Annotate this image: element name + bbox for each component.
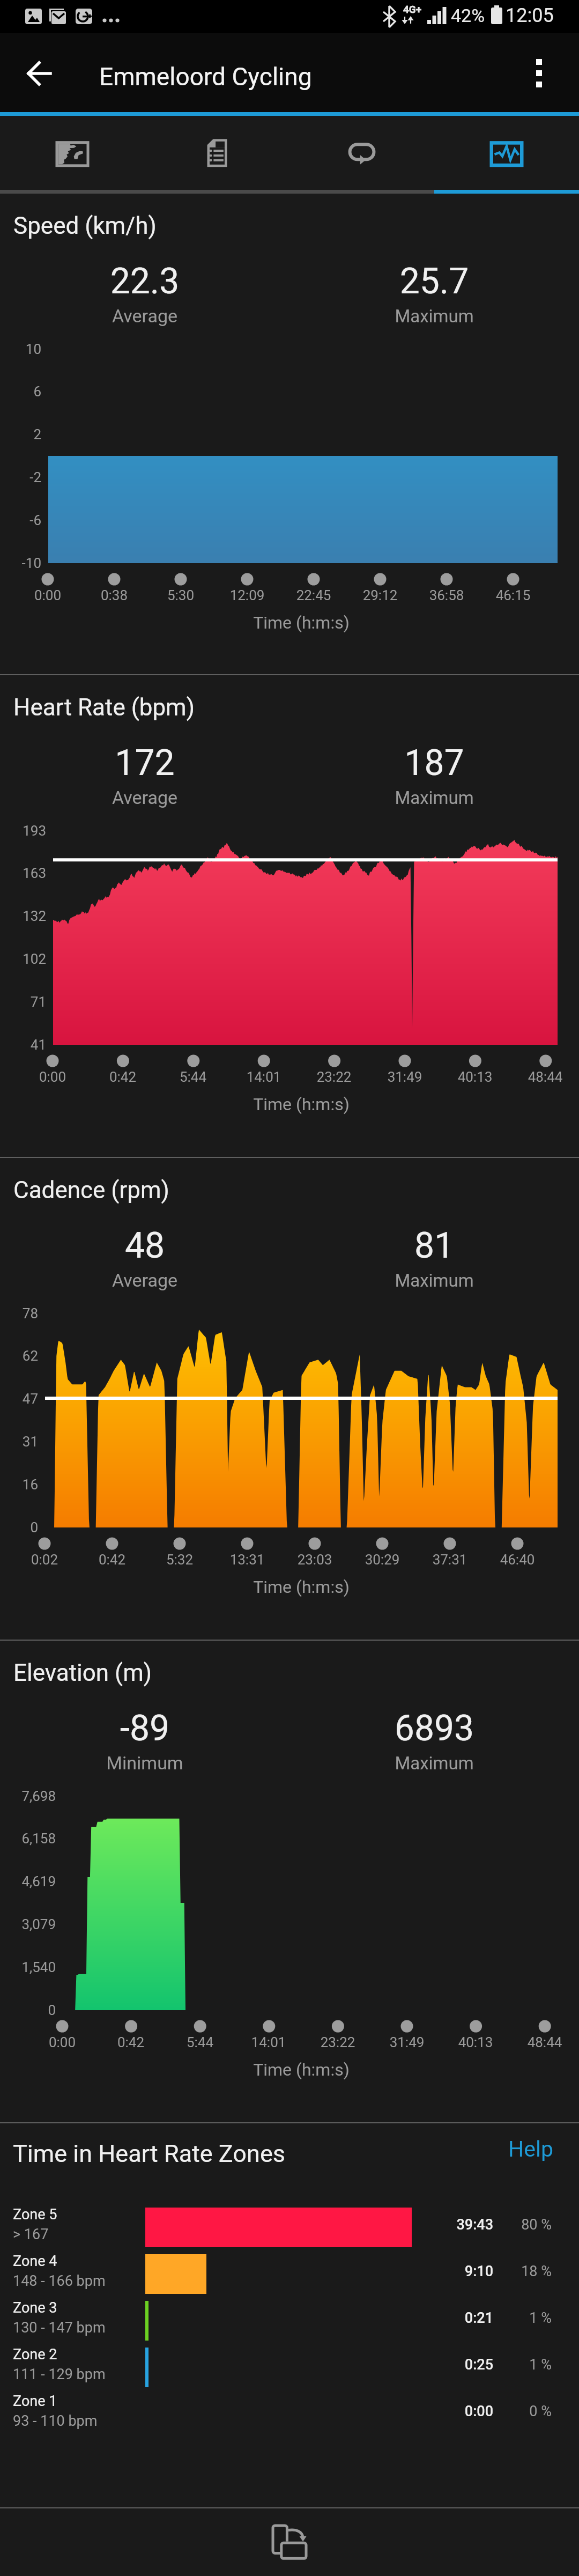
button[interactable]: Help — [499, 2130, 563, 2168]
staticText: 22:45 — [153, 587, 474, 603]
staticText: 71 — [0, 994, 46, 1010]
button[interactable]: Zone 2 — [0, 2348, 579, 2394]
staticText: 111 - 129 bpm — [13, 2366, 106, 2383]
staticText: 6893 — [273, 1708, 579, 1749]
staticText: Time in Heart Rate Zones — [13, 2139, 285, 2168]
staticText: 25.7 — [273, 261, 579, 302]
staticText: -2 — [0, 469, 41, 485]
staticText: 48 — [0, 1225, 306, 1266]
staticText: 0:21 — [407, 2309, 493, 2327]
button[interactable]: Map — [0, 116, 145, 190]
staticText: Time (h:m:s) — [140, 1577, 462, 1597]
staticText: 6,158 — [0, 1830, 56, 1847]
staticText: 187 — [273, 742, 579, 784]
button[interactable]: Zone 4 — [0, 2254, 579, 2301]
button[interactable]: Details — [145, 116, 289, 190]
staticText: 0 — [0, 2002, 56, 2018]
button[interactable]: Zone 5 — [0, 2208, 579, 2254]
staticText: 193 — [0, 823, 46, 839]
staticText: 0:38 — [0, 587, 275, 603]
staticText: Cadence (rpm) — [13, 1176, 169, 1204]
staticText: 0 % — [488, 2403, 552, 2420]
staticText: 0:00 — [0, 2034, 223, 2050]
staticText: 0:42 — [0, 2034, 292, 2050]
staticText: 0:00 — [407, 2403, 493, 2420]
button[interactable]: Rotate screen — [257, 2510, 322, 2574]
staticText: 14:01 — [103, 1069, 425, 1085]
staticText: 93 - 110 bpm — [13, 2412, 98, 2430]
staticText: 163 — [0, 865, 46, 881]
staticText: Zone 2 — [13, 2346, 57, 2363]
button[interactable]: More options — [518, 38, 561, 80]
staticText: 14:01 — [108, 2034, 429, 2050]
staticText: 40:13 — [315, 2034, 579, 2050]
staticText: 29:12 — [219, 587, 541, 603]
staticText: 12:05 — [506, 4, 554, 27]
staticText: 0:42 — [0, 1552, 273, 1568]
staticText: Average — [0, 1269, 306, 1291]
staticText: 30:29 — [221, 1552, 543, 1568]
staticText: Time (h:m:s) — [140, 1094, 462, 1114]
staticText: Heart Rate (bpm) — [13, 693, 195, 721]
staticText: 12:09 — [86, 587, 408, 603]
staticText: 4,619 — [0, 1873, 56, 1889]
staticText: 0:00 — [0, 1069, 213, 1085]
staticText: 7,698 — [0, 1788, 56, 1804]
staticText: 23:22 — [177, 2034, 499, 2050]
staticText: 31:49 — [244, 1069, 566, 1085]
staticText: 172 — [0, 742, 306, 784]
staticText: 0 — [0, 1519, 38, 1536]
staticText: 13:31 — [86, 1552, 408, 1568]
staticText: Help — [508, 2136, 553, 2162]
staticText: Zone 4 — [13, 2253, 57, 2270]
staticText: 62 — [0, 1348, 38, 1364]
staticText: 81 — [273, 1225, 579, 1266]
staticText: 42% — [451, 5, 485, 26]
staticText: 130 - 147 bpm — [13, 2319, 106, 2336]
staticText: 40:13 — [314, 1069, 579, 1085]
staticText: 48:44 — [384, 2034, 579, 2050]
staticText: Average — [0, 305, 306, 327]
staticText: 1,540 — [0, 1959, 56, 1975]
staticText: 39:43 — [407, 2216, 493, 2233]
staticText: > 167 — [13, 2226, 49, 2243]
staticText: 0:42 — [0, 1069, 284, 1085]
staticText: Emmeloord Cycling — [99, 62, 312, 91]
staticText: 3,079 — [0, 1916, 56, 1932]
staticText: -89 — [0, 1708, 306, 1749]
staticText: 0:25 — [407, 2356, 493, 2373]
staticText: 2 — [0, 426, 41, 442]
button[interactable]: Zone 3 — [0, 2301, 579, 2348]
staticText: 16 — [0, 1477, 38, 1493]
staticText: Maximum — [273, 787, 579, 808]
staticText: 80 % — [488, 2216, 552, 2233]
staticText: 0:00 — [0, 587, 209, 603]
staticText: 10 — [0, 341, 41, 357]
staticText: Zone 1 — [13, 2393, 57, 2410]
staticText: 18 % — [488, 2263, 552, 2280]
staticText: 5:30 — [20, 587, 342, 603]
staticText: 5:44 — [39, 2034, 361, 2050]
staticText: 41 — [0, 1037, 46, 1053]
staticText: 5:44 — [32, 1069, 354, 1085]
button[interactable]: Zone 1 — [0, 2394, 579, 2441]
staticText: 31 — [0, 1434, 38, 1450]
staticText: 148 - 166 bpm — [13, 2272, 106, 2290]
button[interactable]: Laps — [289, 116, 434, 190]
staticText: 0:02 — [0, 1552, 205, 1568]
staticText: 46:15 — [352, 587, 579, 603]
staticText: Maximum — [273, 1270, 579, 1291]
staticText: Average — [0, 787, 306, 808]
staticText: Minimum — [0, 1752, 306, 1774]
button[interactable]: Charts — [434, 116, 579, 190]
staticText: 78 — [0, 1305, 38, 1322]
staticText: -10 — [0, 555, 41, 571]
staticText: 36:58 — [286, 587, 579, 603]
staticText: 1 % — [488, 2356, 552, 2373]
staticText: 5:32 — [19, 1552, 340, 1568]
staticText: Zone 5 — [13, 2206, 57, 2223]
staticText: 22.3 — [0, 261, 306, 302]
button[interactable]: Navigate up — [18, 51, 62, 95]
staticText: 102 — [0, 951, 46, 967]
staticText: 37:31 — [289, 1552, 579, 1568]
